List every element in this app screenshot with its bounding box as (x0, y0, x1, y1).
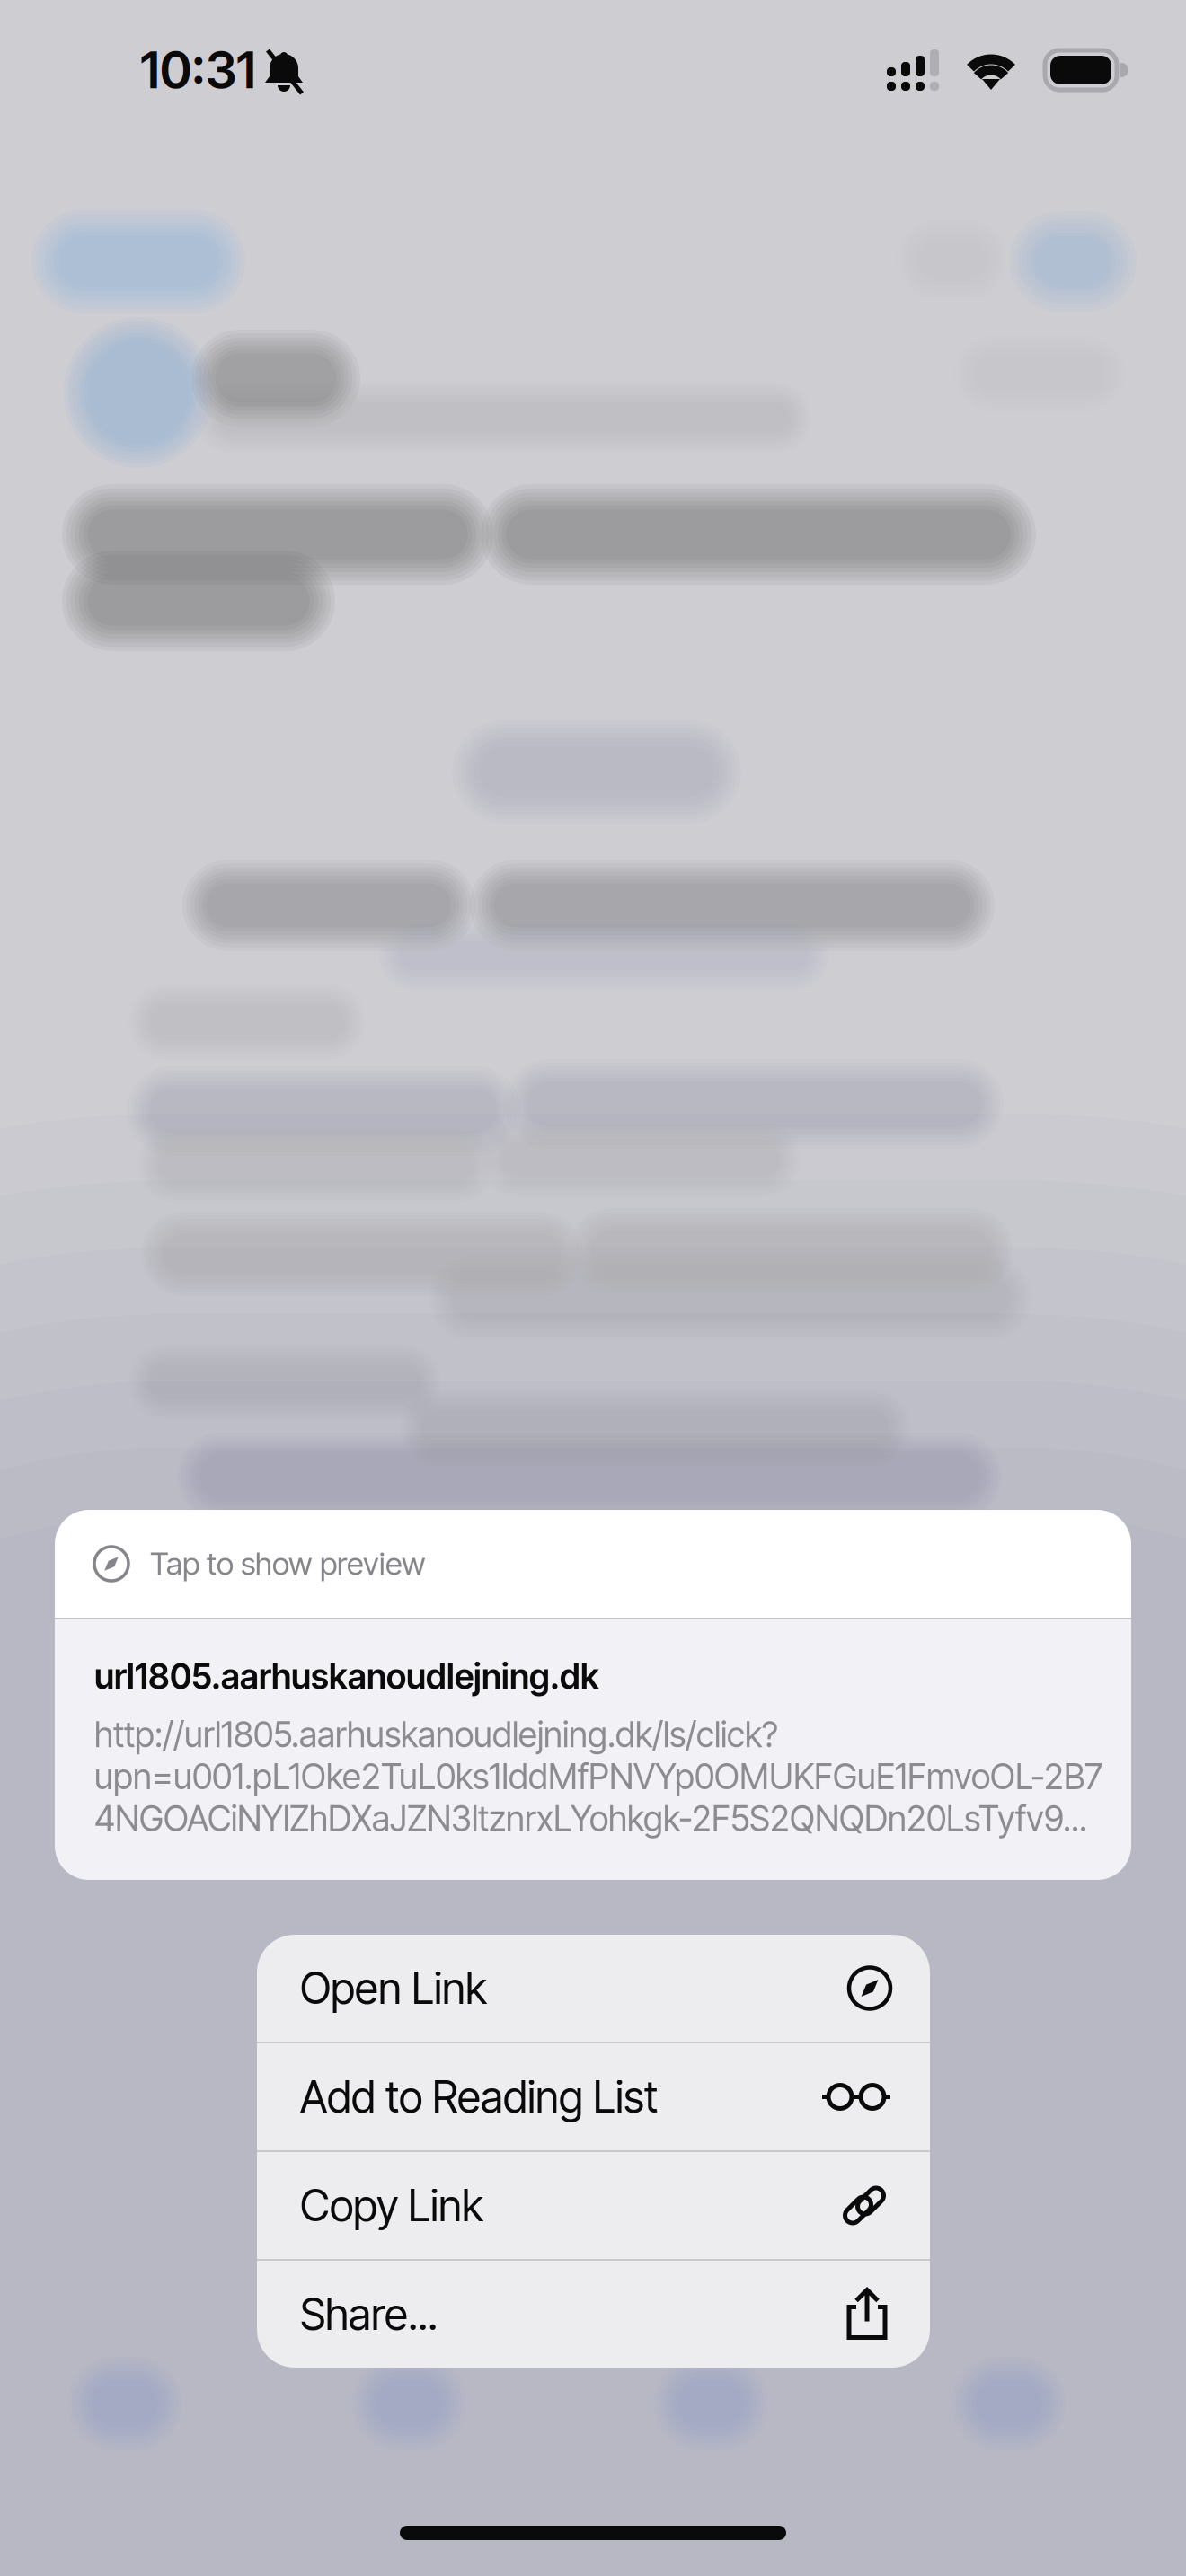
staticText: Share... (300, 2288, 438, 2340)
staticText: 4NGOACiNYlZhDXaJZN3ltznrxLYohkgk-2F5S2QN… (94, 1798, 1087, 1840)
staticText: upn=u001.pL1Oke2TuL0ks1IddMfPNVYp0OMUKFG… (94, 1756, 1102, 1798)
button[interactable]: Add to Reading List (257, 2043, 930, 2150)
staticText: Copy Link (300, 2179, 483, 2232)
staticText: 10:31 (140, 40, 256, 101)
button[interactable]: Tap to show preview (55, 1510, 1131, 1618)
staticText: http://url1805.aarhuskanoudlejning.dk/ls… (94, 1714, 778, 1756)
staticText: Tap to show preview (150, 1545, 426, 1583)
button[interactable]: Open Link (257, 1935, 930, 2042)
staticText: Open Link (300, 1962, 487, 2014)
button[interactable]: Share... (257, 2261, 930, 2368)
staticText: Add to Reading List (300, 2071, 658, 2123)
staticText: url1805.aarhuskanoudlejning.dk (94, 1655, 599, 1697)
button[interactable]: Copy Link (257, 2152, 930, 2259)
